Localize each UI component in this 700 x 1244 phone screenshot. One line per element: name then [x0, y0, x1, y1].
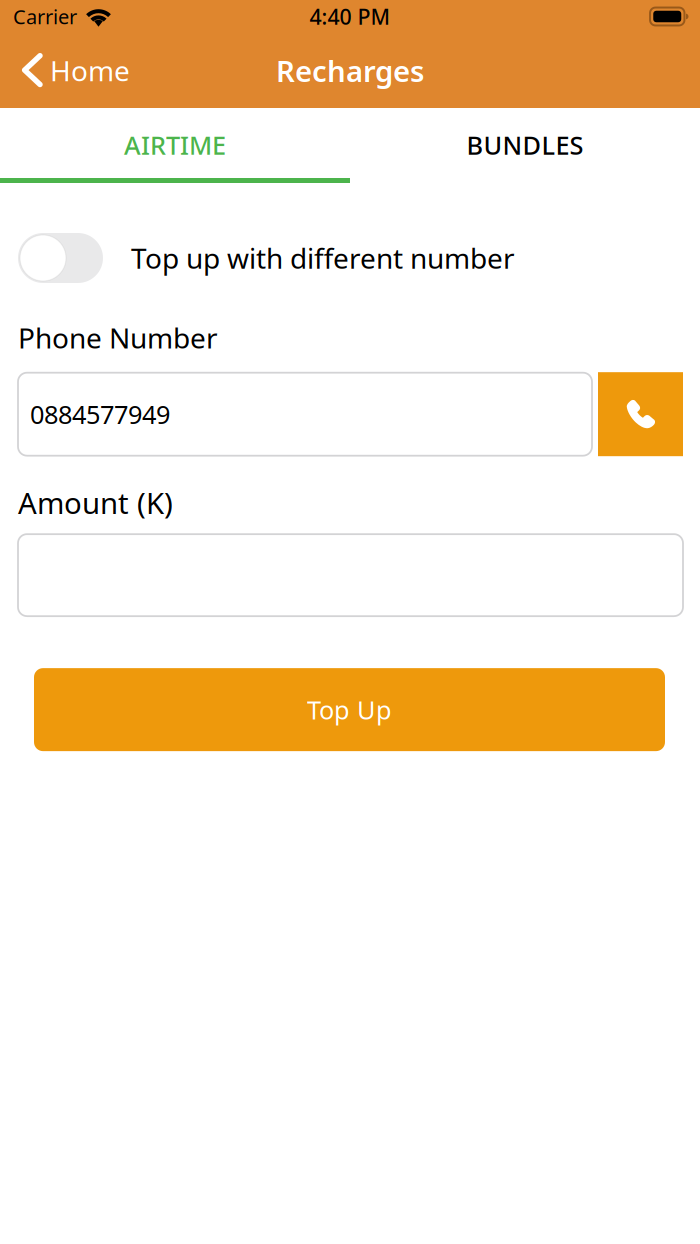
staticText: Top up with different number: [131, 239, 515, 277]
staticText: Phone Number: [18, 319, 218, 356]
button[interactable]: Home: [0, 33, 142, 108]
staticText: Home: [50, 52, 130, 89]
staticText: 4:40 PM: [309, 2, 390, 31]
button[interactable]: Pick contact: [598, 372, 683, 456]
staticText: Top Up: [307, 693, 392, 726]
button[interactable]: AIRTIME: [0, 108, 350, 183]
staticText: Amount (K): [18, 483, 173, 522]
button[interactable]: BUNDLES: [350, 108, 700, 183]
staticText: Carrier: [13, 3, 77, 30]
staticText: BUNDLES: [466, 128, 583, 162]
staticText: AIRTIME: [124, 128, 226, 162]
staticText: Recharges: [276, 51, 424, 90]
button[interactable]: Top up with different number: [18, 233, 700, 283]
button[interactable]: Top Up: [34, 668, 665, 751]
staticText: 0884577949: [30, 397, 170, 431]
